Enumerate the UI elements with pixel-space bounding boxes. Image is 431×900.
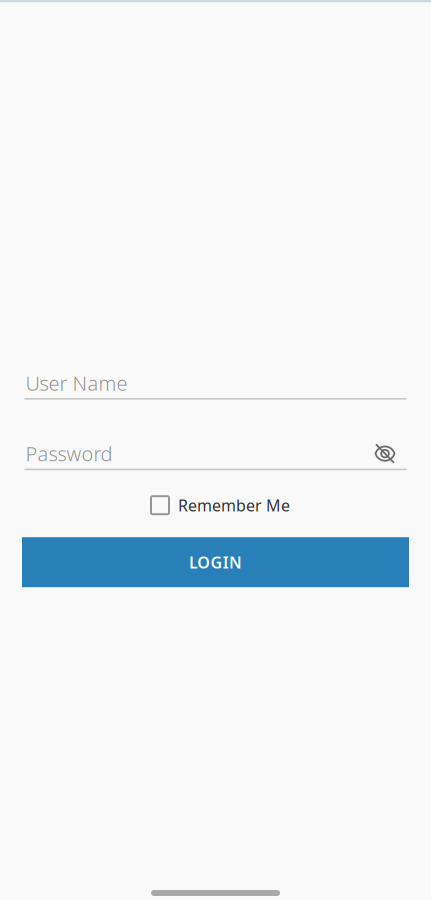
staticText: LOGIN (189, 552, 242, 573)
button[interactable]: Remember Me (151, 495, 290, 515)
staticText: User Name (25, 370, 127, 396)
staticText: Remember Me (178, 495, 290, 516)
button[interactable]: Show password (374, 444, 395, 464)
staticText: Password (25, 440, 112, 467)
button[interactable]: LOGIN (22, 537, 409, 587)
